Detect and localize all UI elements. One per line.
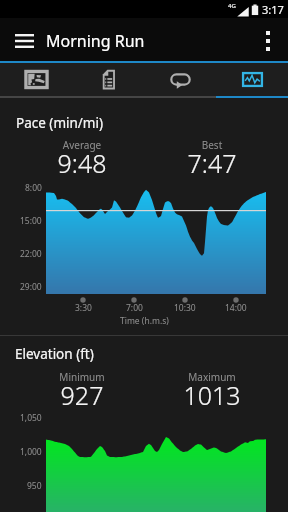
staticText: 3:30 xyxy=(75,302,92,314)
button[interactable]: Map xyxy=(0,63,72,96)
staticText: Maximum xyxy=(152,370,272,384)
button[interactable]: More options xyxy=(254,18,288,61)
staticText: 22:00 xyxy=(20,248,42,260)
staticText: Minimum xyxy=(22,370,142,384)
staticText: Pace (min/mi) xyxy=(16,114,104,132)
staticText: 927 xyxy=(22,378,142,412)
staticText: 1013 xyxy=(152,378,272,412)
staticText: Time (h.m.s) xyxy=(120,315,169,327)
staticText: Best xyxy=(152,138,272,152)
staticText: 10:30 xyxy=(174,302,196,314)
staticText: 1,050 xyxy=(20,412,42,424)
staticText: 4G xyxy=(228,2,236,10)
button[interactable]: Charts xyxy=(216,63,288,96)
staticText: 14:00 xyxy=(225,302,247,314)
staticText: 8:00 xyxy=(25,182,42,194)
staticText: Elevation (ft) xyxy=(15,345,94,363)
staticText: Morning Run xyxy=(46,30,145,52)
staticText: 7:47 xyxy=(152,146,272,180)
button[interactable]: Laps xyxy=(144,63,216,96)
staticText: Average xyxy=(22,138,142,152)
staticText: 15:00 xyxy=(20,215,42,227)
staticText: 950 xyxy=(27,480,42,492)
staticText: 7:00 xyxy=(126,302,143,314)
staticText: 1,000 xyxy=(20,446,42,458)
staticText: 9:48 xyxy=(22,146,142,180)
staticText: 29:00 xyxy=(20,281,42,293)
button[interactable]: Details xyxy=(72,63,144,96)
button[interactable]: Open navigation drawer xyxy=(0,18,46,61)
staticText: 3:17 xyxy=(262,2,284,17)
